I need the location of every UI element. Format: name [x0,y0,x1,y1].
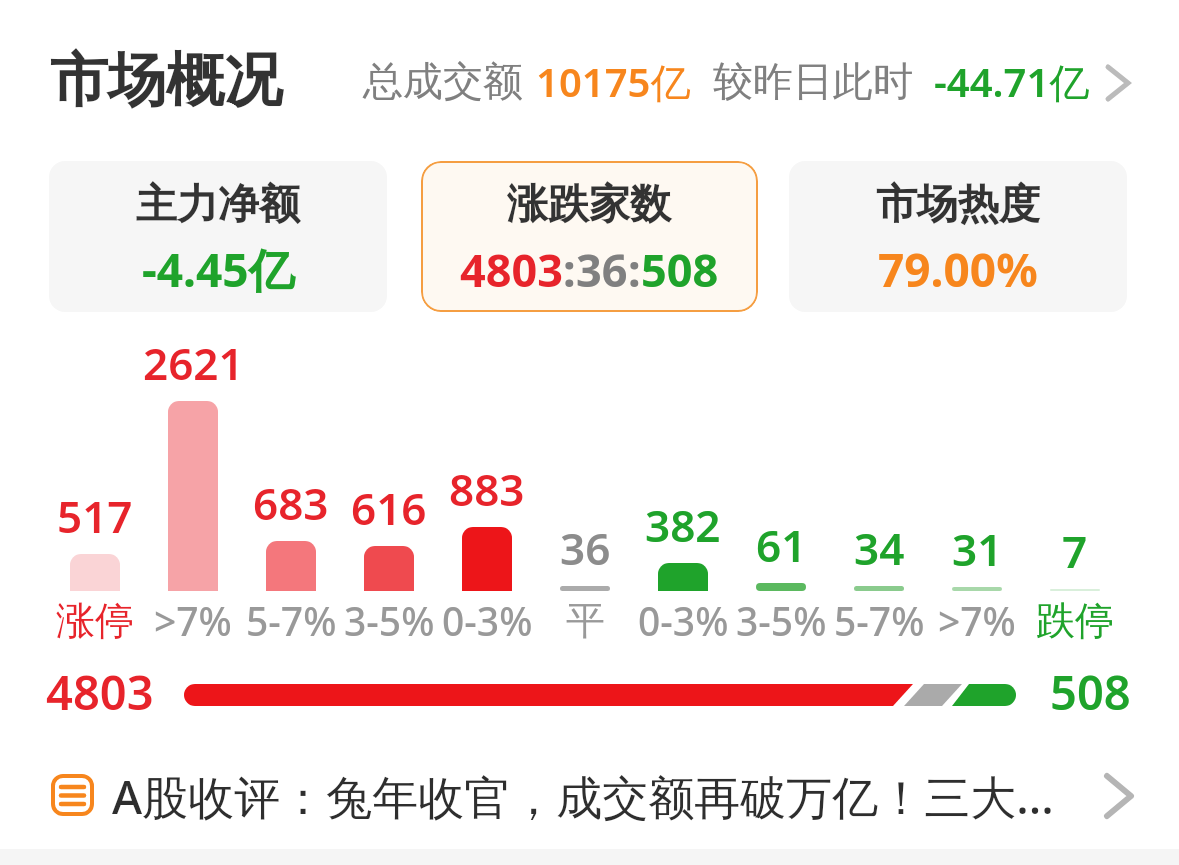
staticText: 跌停 [1036,596,1114,645]
button[interactable] [49,161,387,312]
staticText: 34 [854,518,905,578]
staticText: 3-5% [736,594,827,647]
staticText: 平 [566,596,605,645]
staticText: : [628,239,641,300]
staticText: 主力净额 [136,179,300,231]
staticText: : [563,239,576,300]
staticText: 市场热度 [876,179,1040,231]
staticText: 883 [449,459,525,519]
staticText: -44.71亿 [934,54,1090,109]
staticText: 79.00% [878,238,1038,301]
staticText: 涨跌家数 [507,179,671,231]
staticText: 5-7% [834,594,925,647]
staticText: 2621 [143,333,244,393]
staticText: 涨停 [56,596,134,645]
button[interactable] [0,40,1179,120]
staticText: 61 [756,515,807,575]
staticText: 10175亿 [536,54,691,109]
button[interactable] [421,161,758,312]
staticText: 36 [576,239,628,300]
staticText: 517 [57,486,133,546]
staticText: A股收评：兔年收官，成交额再破万亿！三大... [112,765,1054,828]
staticText: 7 [1062,521,1088,581]
staticText: >7% [938,594,1016,647]
staticText: 5-7% [246,594,337,647]
staticText: 4803 [46,660,154,724]
staticText: 683 [253,473,329,533]
staticText: 0-3% [638,594,729,647]
staticText: 较昨日此时 [713,56,913,106]
staticText: 3-5% [344,594,435,647]
staticText: 616 [351,478,427,538]
staticText: 总成交额 [363,56,523,106]
staticText: 31 [952,519,1003,579]
staticText: 508 [641,239,719,300]
staticText: 市场概况 [50,44,282,117]
staticText: -4.45亿 [142,238,295,301]
staticText: >7% [154,594,232,647]
staticText: 4803 [460,239,563,300]
staticText: 0-3% [442,594,533,647]
button[interactable] [0,760,1179,840]
staticText: 36 [560,518,611,578]
staticText: 382 [645,495,721,555]
staticText: 508 [1050,660,1131,724]
button[interactable] [789,161,1127,312]
